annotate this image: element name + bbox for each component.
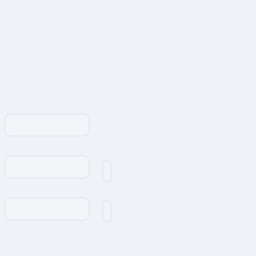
button[interactable]: Item 2 details [103, 161, 111, 181]
button[interactable]: Item 1 [5, 114, 89, 136]
button[interactable]: Item 3 [5, 198, 89, 220]
button[interactable]: Item 3 details [103, 201, 111, 221]
button[interactable]: Item 2 [5, 156, 89, 178]
